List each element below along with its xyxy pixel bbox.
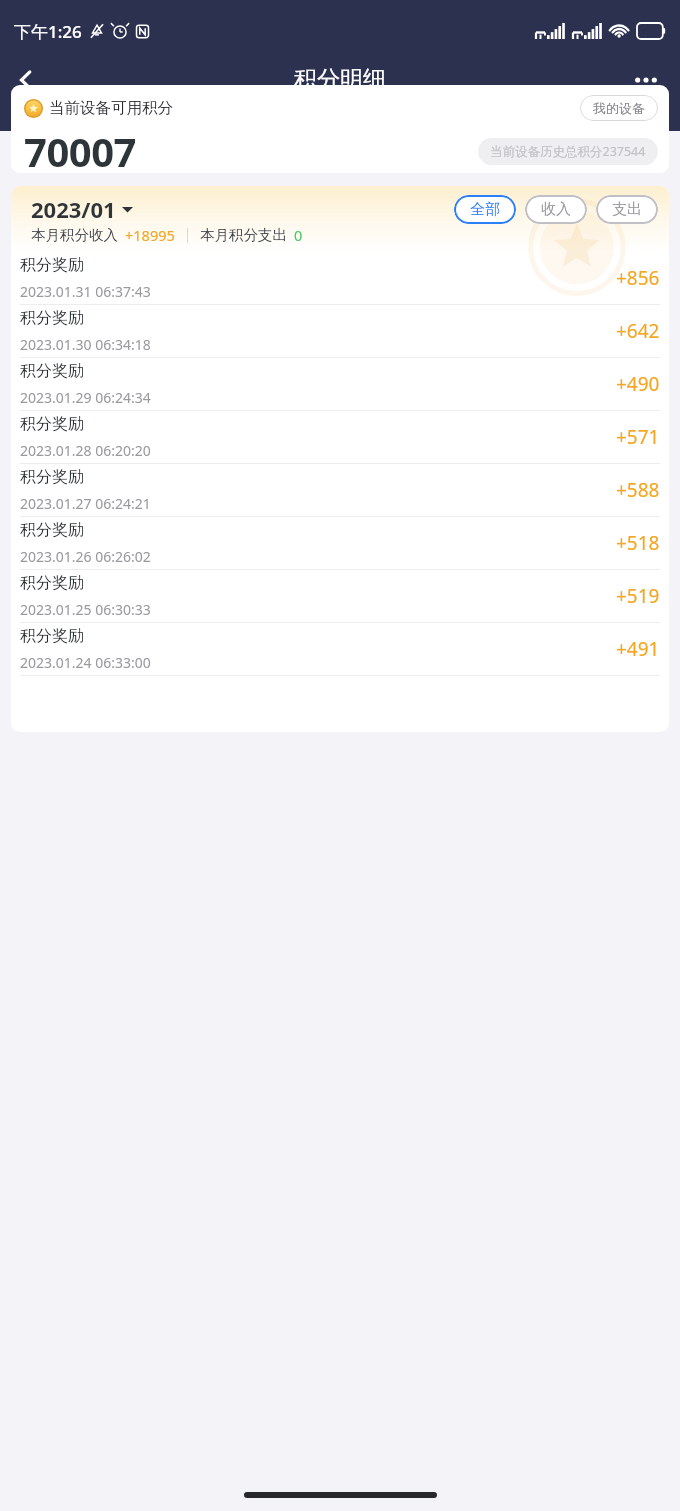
staticText: 积分奖励 xyxy=(20,308,84,328)
staticText: +491 xyxy=(616,636,660,662)
staticText: 2023.01.27 06:24:21 xyxy=(20,494,151,513)
staticText: 积分奖励 xyxy=(20,255,84,275)
staticText: 积分奖励 xyxy=(20,626,84,646)
button[interactable]: 支出 xyxy=(596,195,658,224)
staticText: 当前设备可用积分 xyxy=(49,98,173,118)
button[interactable]: 收入 xyxy=(525,195,587,224)
staticText: 70007 xyxy=(24,124,136,173)
button[interactable]: 积分奖励 xyxy=(11,517,669,569)
staticText: +518 xyxy=(616,530,660,556)
staticText: +519 xyxy=(616,583,660,609)
staticText: +490 xyxy=(616,371,660,397)
staticText: 2023/01 xyxy=(31,194,116,224)
staticText: 2023.01.28 06:20:20 xyxy=(20,441,151,460)
staticText: 2023.01.24 06:33:00 xyxy=(20,653,151,672)
staticText: 2023.01.25 06:30:33 xyxy=(20,600,151,619)
staticText: 2023.01.26 06:26:02 xyxy=(20,547,151,566)
staticText: 收入 xyxy=(541,200,571,219)
button[interactable]: 积分奖励 xyxy=(11,305,669,357)
button[interactable]: 当前设备可用积分 xyxy=(11,85,669,173)
staticText: 积分奖励 xyxy=(20,520,84,540)
staticText: 2023.01.31 06:37:43 xyxy=(20,282,151,301)
button[interactable]: Back xyxy=(0,54,52,106)
button[interactable]: 积分奖励 xyxy=(11,411,669,463)
staticText: 本月积分收入 xyxy=(31,226,118,244)
button[interactable]: 我的设备 xyxy=(580,95,658,121)
staticText: 积分奖励 xyxy=(20,414,84,434)
staticText: 积分奖励 xyxy=(20,361,84,381)
staticText: 支出 xyxy=(612,200,642,219)
button[interactable]: 积分奖励 xyxy=(11,464,669,516)
staticText: 全部 xyxy=(470,200,500,219)
staticText: +642 xyxy=(616,318,660,344)
staticText: 我的设备 xyxy=(593,100,645,116)
button[interactable]: 全部 xyxy=(454,195,516,224)
button[interactable]: 积分奖励 xyxy=(11,358,669,410)
staticText: +856 xyxy=(616,265,660,291)
staticText: +571 xyxy=(616,424,660,450)
button[interactable]: More options xyxy=(620,54,672,106)
staticText: 2023.01.29 06:24:34 xyxy=(20,388,151,407)
staticText: 当前设备历史总积分237544 xyxy=(490,143,646,160)
staticText: +18995 xyxy=(125,225,175,245)
staticText: 本月积分支出 xyxy=(200,226,287,244)
staticText: 积分明细 xyxy=(294,65,386,94)
staticText: 下午1:26 xyxy=(14,20,82,43)
button[interactable]: 积分奖励 xyxy=(11,570,669,622)
staticText: 0 xyxy=(294,225,303,245)
staticText: 积分奖励 xyxy=(20,573,84,593)
staticText: 积分奖励 xyxy=(20,467,84,487)
button[interactable]: 积分奖励 xyxy=(11,252,669,304)
button[interactable]: 积分奖励 xyxy=(11,623,669,675)
staticText: 2023.01.30 06:34:18 xyxy=(20,335,151,354)
button[interactable]: 2023/01 xyxy=(31,194,133,224)
staticText: +588 xyxy=(616,477,660,503)
